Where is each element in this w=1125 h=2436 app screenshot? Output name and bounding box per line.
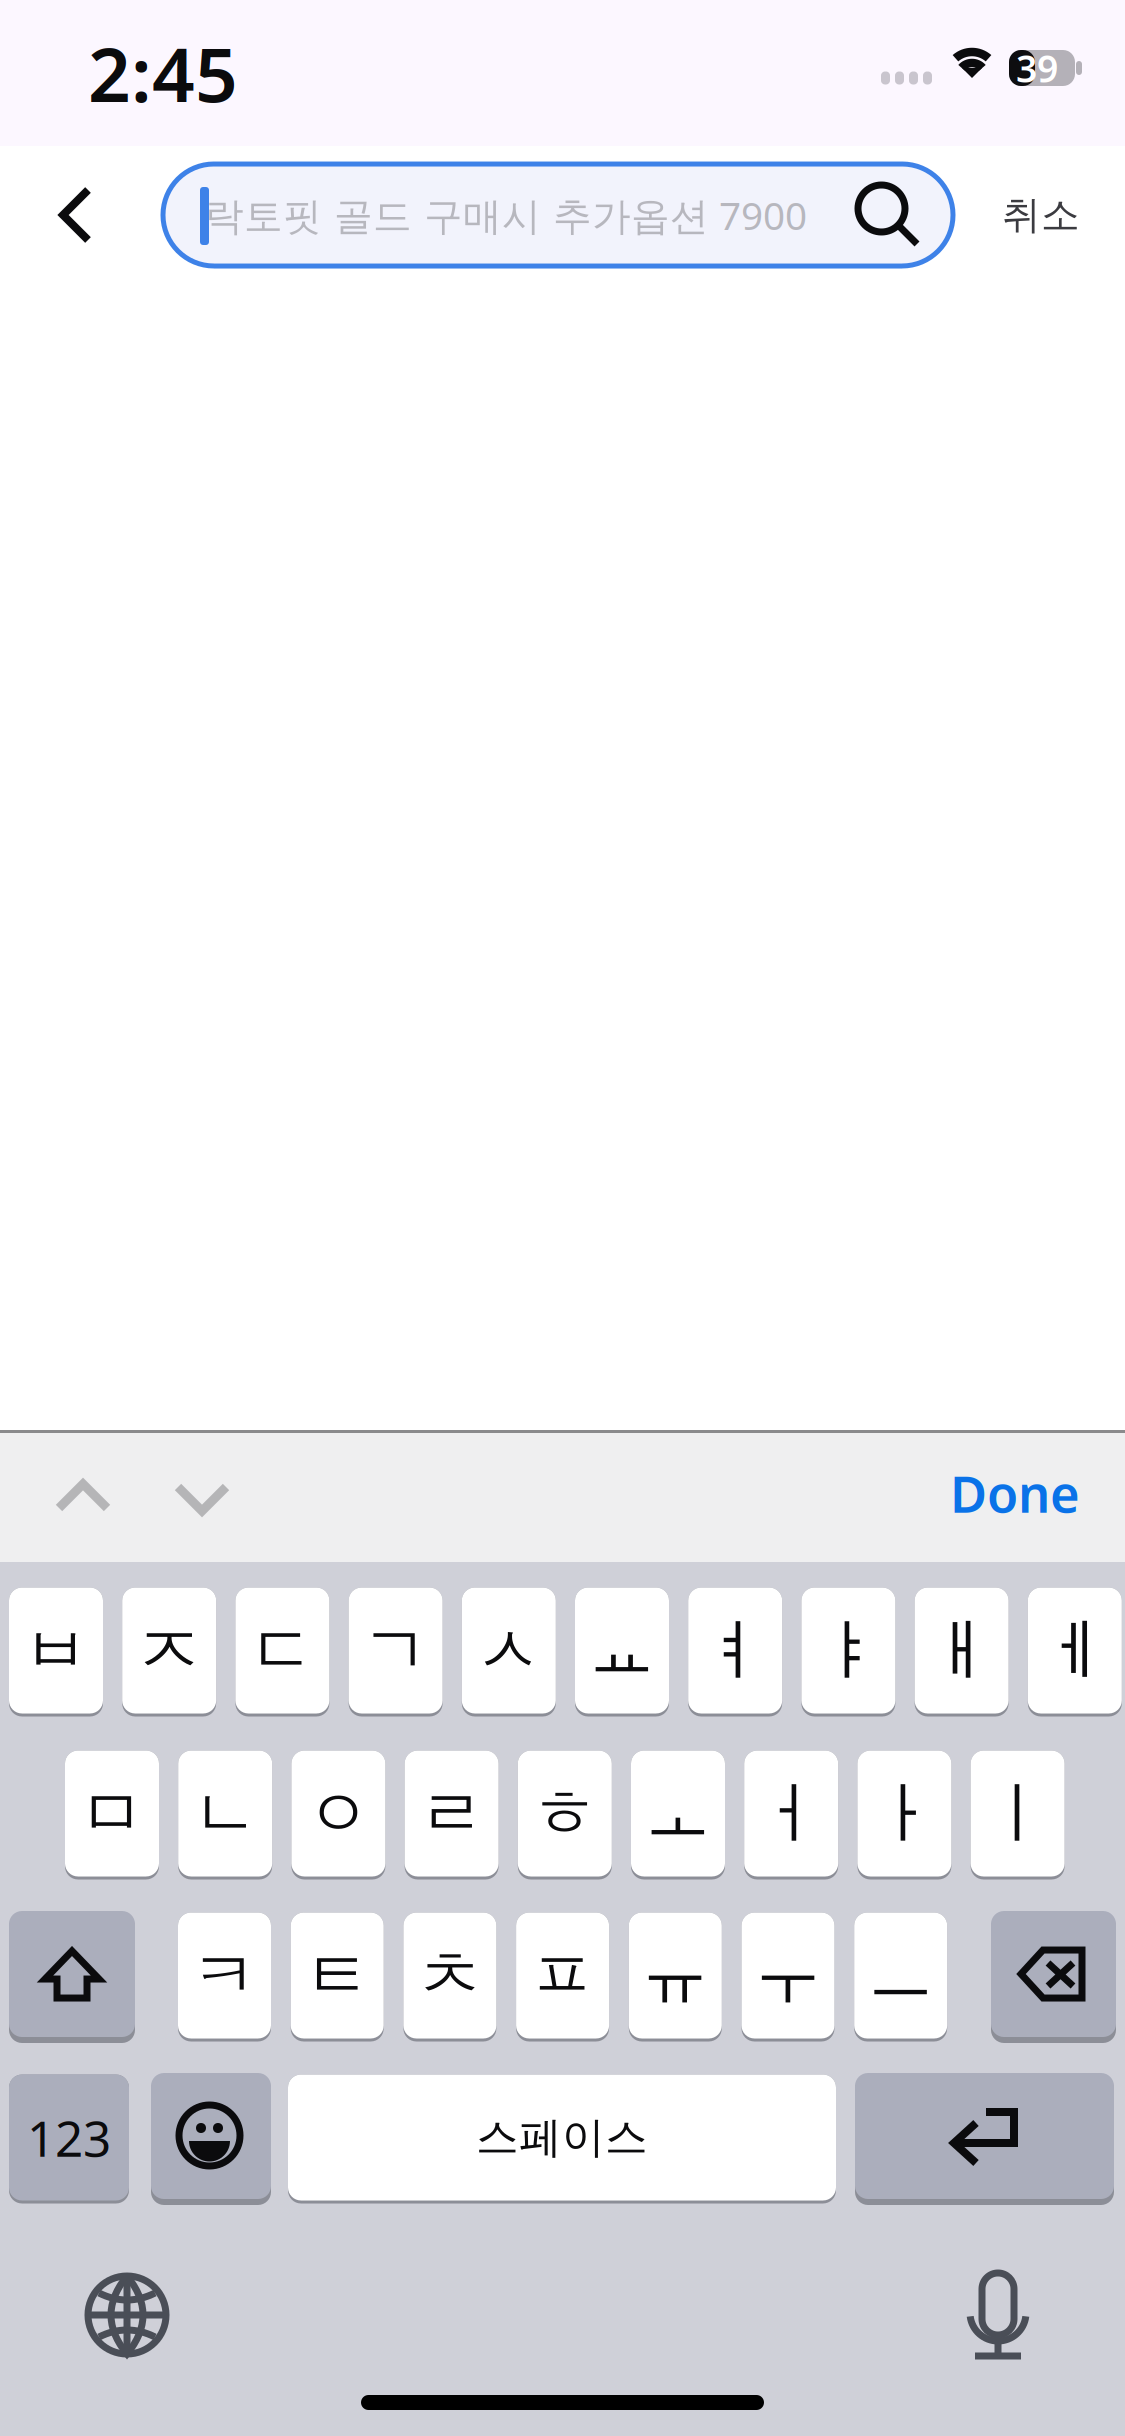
staticText: 2:45 — [88, 23, 238, 123]
button[interactable]: Next keyboard — [77, 2265, 177, 2365]
staticText: ㅣ — [984, 1773, 1051, 1854]
staticText: ㅗ — [644, 1773, 711, 1854]
button[interactable]: ㅎ — [518, 1749, 612, 1878]
button[interactable]: ㅋ — [178, 1911, 271, 2040]
button[interactable]: ㅐ — [915, 1586, 1009, 1715]
button[interactable]: Delete — [991, 1911, 1116, 2040]
button[interactable]: ㅔ — [1028, 1586, 1122, 1715]
button[interactable]: Done — [950, 1438, 1100, 1548]
staticText: Done — [950, 1459, 1080, 1527]
staticText: ㅈ — [136, 1610, 203, 1691]
button[interactable]: ㅂ — [9, 1586, 103, 1715]
staticText: 스페이스 — [476, 2111, 648, 2164]
button[interactable]: ㅛ — [575, 1586, 669, 1715]
staticText: ㅑ — [815, 1610, 882, 1691]
button[interactable]: Shift — [9, 1911, 135, 2040]
button[interactable]: ㅗ — [631, 1749, 725, 1878]
button[interactable]: ㅡ — [854, 1911, 947, 2040]
button[interactable]: ㅌ — [291, 1911, 384, 2040]
button[interactable]: ㅣ — [971, 1749, 1065, 1878]
staticText: 락토핏 골드 구매시 추가옵션 7900 — [205, 189, 807, 241]
staticText: ㅡ — [867, 1935, 934, 2016]
button[interactable]: 123 — [9, 2073, 129, 2202]
staticText: ㄱ — [362, 1610, 429, 1691]
staticText: ㅏ — [871, 1773, 938, 1854]
button[interactable]: Dictation — [948, 2265, 1048, 2365]
staticText: ㅍ — [529, 1935, 596, 2016]
staticText: ㄹ — [418, 1773, 485, 1854]
staticText: ㅕ — [702, 1610, 769, 1691]
staticText: ㅁ — [78, 1773, 145, 1854]
staticText: ㅔ — [1041, 1610, 1108, 1691]
button[interactable]: Previous field — [28, 1441, 138, 1551]
button[interactable]: Next field — [147, 1443, 257, 1553]
staticText: ㅋ — [191, 1935, 258, 2016]
button[interactable]: ㅠ — [629, 1911, 722, 2040]
staticText: ㅌ — [304, 1935, 371, 2016]
button[interactable]: ㄷ — [235, 1586, 329, 1715]
staticText: ㅠ — [642, 1935, 709, 2016]
button[interactable]: ㅜ — [741, 1911, 834, 2040]
button[interactable]: ㄱ — [349, 1586, 443, 1715]
button[interactable]: ㄹ — [405, 1749, 499, 1878]
staticText: 취소 — [1002, 191, 1080, 239]
button[interactable]: Back — [28, 168, 122, 262]
staticText: ㅛ — [588, 1610, 655, 1691]
button[interactable]: ㅏ — [857, 1749, 951, 1878]
button[interactable]: Return — [855, 2073, 1114, 2202]
button[interactable]: ㄴ — [178, 1749, 272, 1878]
staticText: ㄴ — [192, 1773, 259, 1854]
button[interactable]: ㅑ — [801, 1586, 895, 1715]
staticText: ㅜ — [754, 1935, 821, 2016]
staticText: ㅓ — [758, 1773, 825, 1854]
staticText: ㅎ — [531, 1773, 598, 1854]
button[interactable]: ㅊ — [403, 1911, 496, 2040]
staticText: ㄷ — [249, 1610, 316, 1691]
staticText: 39 — [1016, 43, 1058, 93]
button[interactable]: ㅓ — [744, 1749, 838, 1878]
button[interactable]: 락토핏 골드 구매시 추가옵션 7900 — [163, 164, 953, 266]
button[interactable]: ㅕ — [688, 1586, 782, 1715]
button[interactable]: ㅍ — [516, 1911, 609, 2040]
button[interactable]: 스페이스 — [288, 2073, 836, 2202]
button[interactable]: ㅈ — [122, 1586, 216, 1715]
staticText: 123 — [27, 2105, 111, 2170]
staticText: ㅊ — [416, 1935, 483, 2016]
button[interactable]: 취소 — [981, 164, 1101, 266]
button[interactable]: ㅁ — [65, 1749, 159, 1878]
staticText: ㅇ — [305, 1773, 372, 1854]
button[interactable]: ㅅ — [462, 1586, 556, 1715]
staticText: ㅂ — [22, 1610, 89, 1691]
staticText: ㅐ — [928, 1610, 995, 1691]
button[interactable]: ㅇ — [291, 1749, 385, 1878]
staticText: ㅅ — [475, 1610, 542, 1691]
button[interactable]: Emoji — [151, 2073, 271, 2202]
